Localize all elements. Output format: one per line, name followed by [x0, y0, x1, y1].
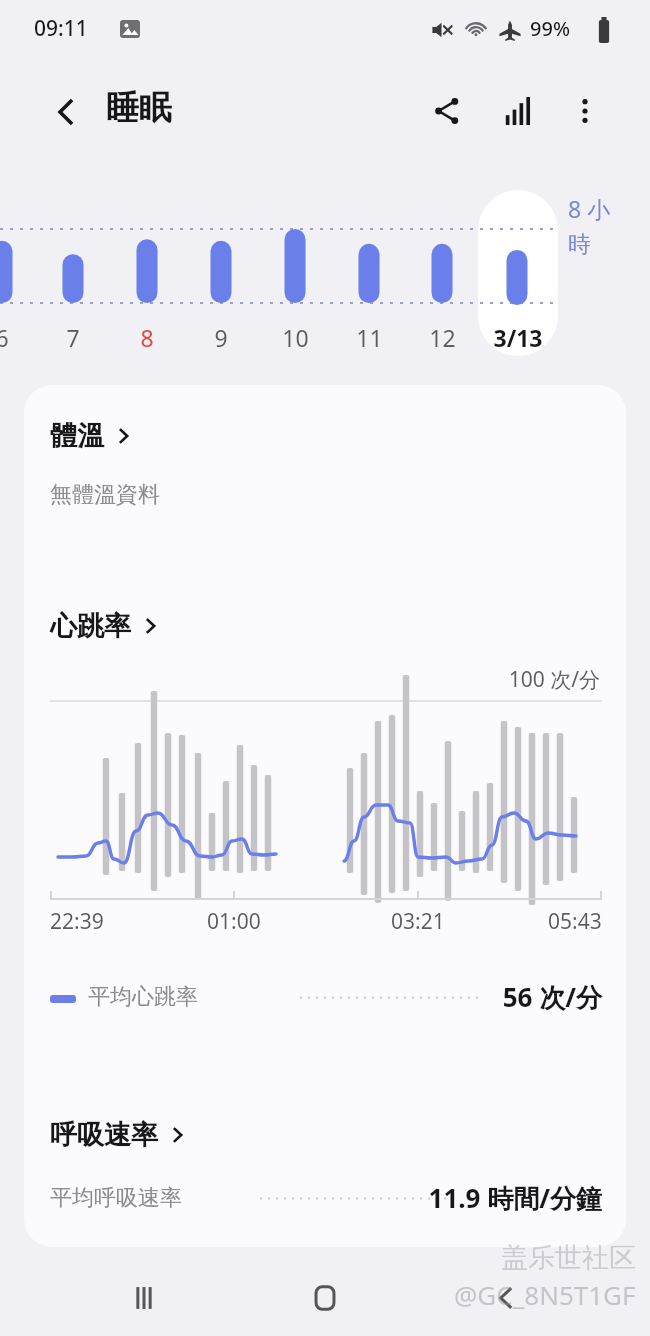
button[interactable]: 12	[412, 320, 472, 354]
button[interactable]: 心跳率	[50, 609, 161, 643]
staticText: 12	[429, 322, 456, 353]
button[interactable]: Back	[472, 1264, 540, 1332]
staticText: @GC_8N5T1GF	[454, 1277, 636, 1312]
button[interactable]: 11	[339, 320, 399, 354]
button[interactable]: 呼吸速率	[50, 1118, 188, 1152]
staticText: 時	[568, 230, 591, 259]
button[interactable]: Recents	[110, 1264, 178, 1332]
staticText: 09:11	[34, 14, 88, 43]
staticText: 8	[140, 322, 154, 353]
staticText: 無體溫資料	[50, 481, 160, 509]
staticText: 呼吸速率	[50, 1118, 158, 1152]
staticText: 10	[282, 322, 309, 353]
button[interactable]: Home	[291, 1264, 359, 1332]
staticText: 7	[66, 322, 80, 353]
staticText: 6	[0, 322, 9, 353]
button[interactable]: 9	[191, 320, 251, 354]
staticText: 9	[214, 322, 228, 353]
staticText: 03:21	[391, 907, 445, 936]
staticText: 01:00	[207, 907, 261, 936]
staticText: 心跳率	[50, 609, 131, 643]
staticText: 99%	[530, 15, 570, 42]
staticText: 體溫	[50, 419, 104, 453]
staticText: 100 次/分	[464, 665, 600, 694]
button[interactable]: 10	[265, 320, 325, 354]
staticText: 22:39	[50, 907, 104, 936]
button[interactable]: 6	[0, 320, 32, 354]
staticText: 8 小	[568, 193, 611, 224]
staticText: 11	[356, 322, 383, 353]
button[interactable]: 體溫	[50, 419, 134, 453]
staticText: 睡眠	[106, 87, 172, 129]
button[interactable]: Back	[36, 82, 96, 142]
staticText: 平均呼吸速率	[50, 1184, 182, 1212]
button[interactable]	[478, 190, 558, 356]
button[interactable]: Share	[418, 82, 476, 140]
staticText: 平均心跳率	[88, 983, 198, 1011]
staticText: 盖乐世社区	[501, 1241, 636, 1275]
button[interactable]: More options	[556, 82, 614, 140]
staticText: 56 次/分	[50, 979, 602, 1015]
button[interactable]: Chart	[488, 82, 546, 140]
staticText: 11.9 時間/分鐘	[50, 1180, 602, 1216]
button[interactable]: 7	[43, 320, 103, 354]
button[interactable]: 8	[117, 320, 177, 354]
staticText: 3/13	[493, 322, 543, 353]
staticText: 05:43	[548, 907, 602, 936]
